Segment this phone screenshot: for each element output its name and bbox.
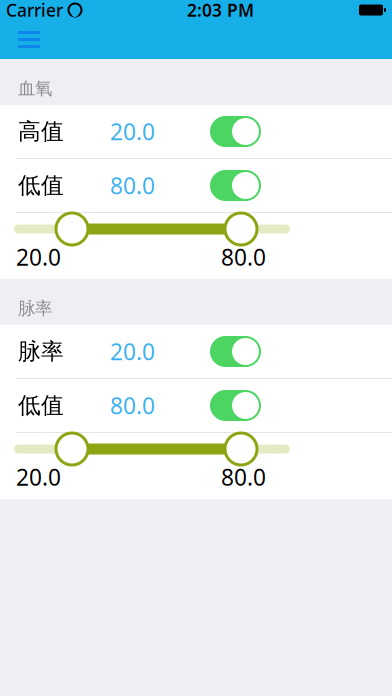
button[interactable]: 低值	[0, 159, 392, 213]
staticText: 高值	[18, 118, 64, 145]
staticText	[63, 0, 68, 21]
button[interactable]: Menu	[6, 23, 52, 56]
staticText: 80.0	[221, 242, 266, 272]
staticText: 80.0	[221, 462, 266, 492]
button[interactable]: 低值	[0, 379, 392, 433]
button[interactable]: 脉率	[0, 325, 392, 379]
staticText: 低值	[18, 172, 64, 199]
staticText: 80.0	[110, 170, 155, 200]
staticText: Carrier	[6, 0, 63, 21]
staticText: 脉率	[18, 338, 64, 365]
staticText: 低值	[18, 392, 64, 419]
staticText: 20.0	[110, 116, 155, 146]
staticText: 2:03 PM	[187, 0, 254, 21]
button[interactable]: 高值	[0, 105, 392, 159]
staticText: 脉率	[18, 298, 52, 319]
staticText: 20.0	[110, 336, 155, 366]
staticText: 80.0	[110, 390, 155, 420]
staticText: 20.0	[16, 242, 61, 272]
staticText: 血氧	[18, 78, 52, 99]
staticText: 20.0	[16, 462, 61, 492]
